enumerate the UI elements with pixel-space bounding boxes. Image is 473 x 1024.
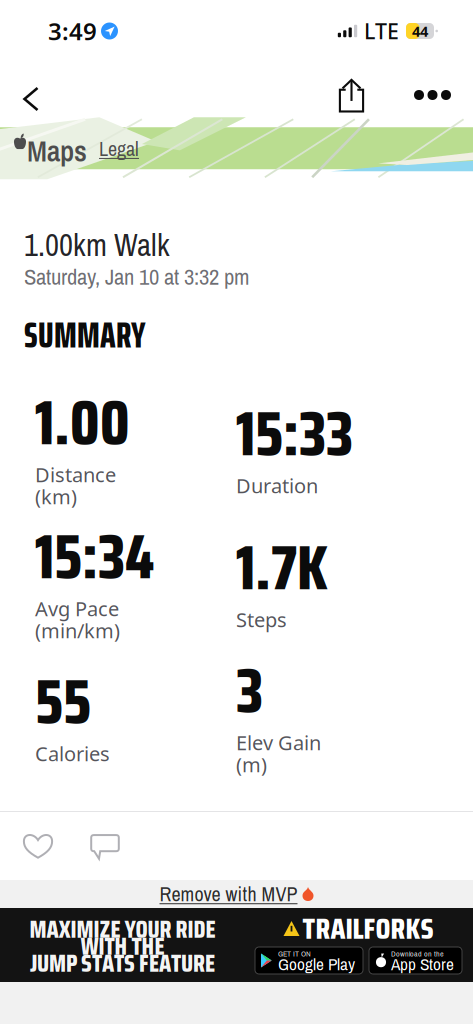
staticText: Saturday, Jan 10 at 3:32 pm: [24, 261, 249, 292]
staticText: (m): [236, 751, 267, 778]
staticText: 55: [35, 654, 91, 750]
staticText: 15:33: [236, 386, 353, 482]
staticText: 44: [412, 21, 428, 41]
staticText: (km): [35, 483, 77, 510]
staticText: Legal: [99, 135, 139, 162]
staticText: LTE: [364, 17, 399, 45]
button[interactable]: Back: [0, 66, 57, 123]
button[interactable]: Comment: [79, 812, 131, 880]
staticText: WITH THE: [80, 928, 164, 965]
staticText: Remove with MVP: [159, 880, 297, 907]
staticText: 1.7K: [236, 520, 328, 616]
button[interactable]: More options: [393, 70, 473, 120]
staticText: Steps: [236, 606, 287, 633]
staticText: Distance: [35, 461, 116, 488]
staticText: JUMP STATS FEATURE: [30, 945, 215, 982]
staticText: 1.00: [35, 375, 130, 471]
staticText: Elev Gain: [236, 729, 321, 756]
staticText: App Store: [391, 952, 454, 976]
staticText: GET IT ON: [278, 948, 311, 959]
button[interactable]: Give kudos: [12, 812, 64, 880]
staticText: Google Play: [278, 952, 355, 976]
staticText: Download on the: [391, 948, 444, 959]
staticText: TRAILFORKS: [302, 905, 433, 952]
staticText: Duration: [236, 472, 318, 499]
staticText: 15:34: [35, 509, 154, 605]
button[interactable]: Share: [319, 68, 393, 121]
staticText: Avg Pace: [35, 595, 119, 622]
staticText: Calories: [35, 740, 110, 767]
staticText: 1.00km Walk: [24, 224, 170, 266]
staticText: Maps: [27, 131, 87, 171]
staticText: MAXIMIZE YOUR RIDE: [29, 911, 215, 948]
staticText: 3:49: [48, 15, 97, 47]
staticText: (min/km): [35, 617, 120, 644]
button[interactable]: Trailforks advertisement: [0, 908, 473, 982]
staticText: SUMMARY: [24, 307, 146, 363]
button[interactable]: Remove with MVP: [0, 880, 473, 908]
staticText: 3: [236, 643, 263, 739]
